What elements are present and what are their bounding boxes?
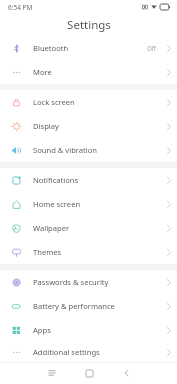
button[interactable]: Display [0,114,177,138]
button[interactable]: Bluetooth [0,36,177,60]
staticText: Settings [67,17,111,33]
button[interactable]: Apps [0,318,177,342]
button[interactable]: Wallpaper [0,216,177,240]
staticText: Bluetooth [33,43,147,53]
staticText: Sound & vibration [33,145,161,155]
button[interactable]: Notifications [0,168,177,192]
staticText: Passwords & security [33,277,161,287]
staticText: Themes [33,247,161,257]
button[interactable]: Themes [0,240,177,264]
button[interactable]: Back [115,362,137,384]
staticText: Additional settings [33,347,161,357]
button[interactable]: Battery & performance [0,294,177,318]
staticText: Lock screen [33,97,161,107]
button[interactable]: Recents [41,362,63,384]
staticText: Wallpaper [33,223,161,233]
button[interactable]: Lock screen [0,90,177,114]
staticText: More [33,67,161,77]
staticText: Home screen [33,199,161,209]
staticText: Battery & performance [33,301,161,311]
staticText: Notifications [33,175,161,185]
button[interactable]: Home [78,362,100,384]
button[interactable]: Passwords & security [0,270,177,294]
staticText: Off [147,44,157,52]
staticText: Apps [33,325,161,335]
button[interactable]: Additional settings [0,342,177,362]
button[interactable]: Sound & vibration [0,138,177,162]
button[interactable]: Home screen [0,192,177,216]
button[interactable]: More [0,60,177,84]
staticText: 6:54 PM [8,3,33,12]
staticText: Display [33,121,161,131]
